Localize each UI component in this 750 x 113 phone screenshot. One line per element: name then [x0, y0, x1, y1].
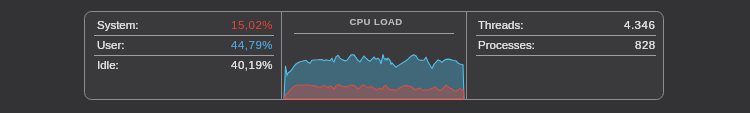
button[interactable]: System:	[94, 16, 274, 35]
staticText: Idle:	[97, 59, 119, 72]
staticText: 4.346	[624, 19, 656, 32]
staticText: 828	[635, 39, 656, 52]
button[interactable]: Threads:	[476, 16, 656, 35]
button[interactable]: Processes:	[476, 36, 656, 55]
staticText: User:	[97, 39, 125, 52]
staticText: Threads:	[478, 19, 524, 32]
staticText: System:	[97, 19, 139, 32]
staticText: Processes:	[478, 39, 535, 52]
button[interactable]: User:	[94, 36, 274, 55]
staticText: 40,19%	[231, 59, 274, 72]
button[interactable]: Idle:	[94, 56, 274, 75]
staticText: 15,02%	[231, 19, 274, 32]
staticText: CPU LOAD	[284, 16, 468, 27]
staticText: 44,79%	[231, 39, 274, 52]
